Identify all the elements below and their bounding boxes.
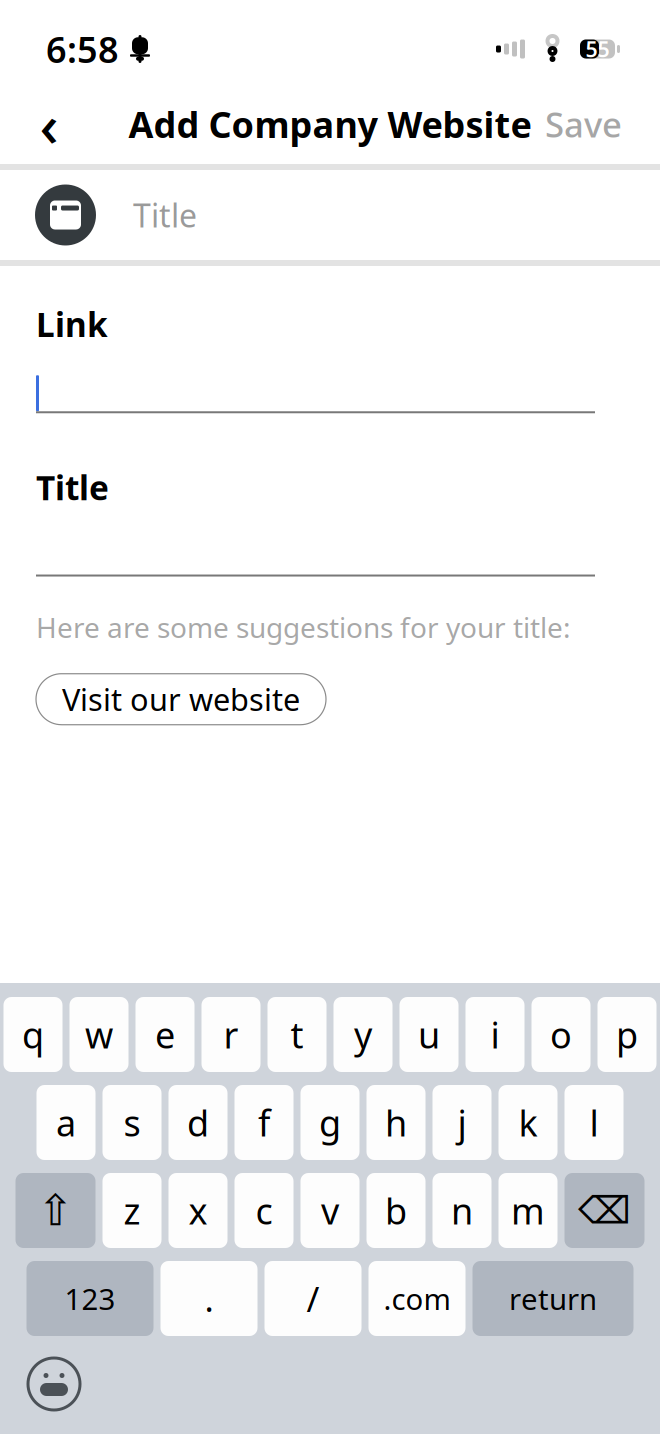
button[interactable]: Visit our website bbox=[36, 674, 326, 725]
staticText: return bbox=[509, 1279, 597, 1318]
button[interactable]: Back bbox=[20, 95, 78, 153]
staticText: f bbox=[258, 1099, 270, 1146]
staticText: o bbox=[550, 1011, 572, 1058]
button[interactable]: r bbox=[201, 997, 260, 1072]
staticText: s bbox=[123, 1099, 140, 1146]
staticText: ⌫ bbox=[578, 1189, 631, 1232]
staticText: j bbox=[457, 1099, 466, 1146]
button[interactable]: x bbox=[168, 1173, 227, 1248]
button[interactable]: / bbox=[264, 1261, 361, 1336]
staticText: . bbox=[204, 1275, 213, 1321]
staticText: y bbox=[354, 1011, 372, 1058]
button[interactable]: p bbox=[597, 997, 656, 1072]
button[interactable]: Emoji keyboard bbox=[26, 1356, 82, 1412]
staticText: Save bbox=[545, 101, 622, 147]
staticText: i bbox=[490, 1011, 499, 1058]
staticText: k bbox=[518, 1099, 537, 1146]
button[interactable]: a bbox=[36, 1085, 95, 1160]
button[interactable]: t bbox=[267, 997, 326, 1072]
button[interactable]: o bbox=[531, 997, 590, 1072]
button[interactable]: l bbox=[564, 1085, 623, 1160]
staticText: w bbox=[85, 1011, 113, 1058]
button[interactable]: 123 bbox=[26, 1261, 153, 1336]
button[interactable]: Save bbox=[533, 98, 634, 150]
button[interactable]: . bbox=[160, 1261, 257, 1336]
staticText: .com bbox=[383, 1279, 450, 1318]
button[interactable]: return bbox=[472, 1261, 633, 1336]
button[interactable]: g bbox=[300, 1085, 359, 1160]
staticText: ⇧ bbox=[37, 1186, 73, 1235]
staticText: Add Company Website bbox=[128, 100, 531, 148]
staticText: x bbox=[188, 1187, 207, 1234]
staticText: a bbox=[56, 1099, 76, 1146]
button[interactable]: z bbox=[102, 1173, 161, 1248]
button[interactable]: j bbox=[432, 1085, 491, 1160]
button[interactable]: h bbox=[366, 1085, 425, 1160]
staticText: d bbox=[187, 1099, 209, 1146]
staticText: / bbox=[306, 1275, 319, 1321]
staticText: n bbox=[451, 1187, 473, 1234]
button[interactable]: y bbox=[333, 997, 392, 1072]
button[interactable]: i bbox=[465, 997, 524, 1072]
staticText: h bbox=[385, 1099, 407, 1146]
button[interactable]: v bbox=[300, 1173, 359, 1248]
button[interactable]: q bbox=[3, 997, 62, 1072]
staticText: 123 bbox=[64, 1279, 115, 1318]
button[interactable]: u bbox=[399, 997, 458, 1072]
staticText: p bbox=[616, 1011, 638, 1058]
staticText: e bbox=[155, 1011, 175, 1058]
staticText: Title bbox=[36, 465, 109, 510]
staticText: Here are some suggestions for your title… bbox=[36, 608, 571, 646]
staticText: l bbox=[589, 1099, 598, 1146]
staticText: Visit our website bbox=[62, 679, 300, 719]
button[interactable]: Title bbox=[0, 170, 660, 260]
staticText: z bbox=[123, 1187, 140, 1234]
staticText: 6:58 bbox=[46, 25, 119, 73]
button[interactable]: Delete bbox=[564, 1173, 644, 1248]
staticText: u bbox=[418, 1011, 440, 1058]
button[interactable]: c bbox=[234, 1173, 293, 1248]
staticText: Title bbox=[133, 194, 197, 236]
staticText: ‹ bbox=[39, 85, 58, 163]
staticText: v bbox=[321, 1187, 339, 1234]
staticText: g bbox=[319, 1099, 341, 1146]
button[interactable]: s bbox=[102, 1085, 161, 1160]
button[interactable]: Shift bbox=[15, 1173, 95, 1248]
button[interactable]: m bbox=[498, 1173, 557, 1248]
button[interactable]: w bbox=[69, 997, 128, 1072]
staticText: t bbox=[290, 1011, 303, 1058]
staticText: Link bbox=[36, 302, 108, 346]
staticText: b bbox=[385, 1187, 407, 1234]
staticText: q bbox=[22, 1011, 44, 1058]
staticText: m bbox=[511, 1187, 545, 1234]
button[interactable]: e bbox=[135, 997, 194, 1072]
staticText: c bbox=[255, 1187, 272, 1234]
button[interactable]: b bbox=[366, 1173, 425, 1248]
button[interactable]: .com bbox=[368, 1261, 465, 1336]
button[interactable]: k bbox=[498, 1085, 557, 1160]
button[interactable]: f bbox=[234, 1085, 293, 1160]
button[interactable]: n bbox=[432, 1173, 491, 1248]
staticText: r bbox=[223, 1011, 238, 1058]
staticText: 55 bbox=[585, 35, 609, 63]
button[interactable]: d bbox=[168, 1085, 227, 1160]
